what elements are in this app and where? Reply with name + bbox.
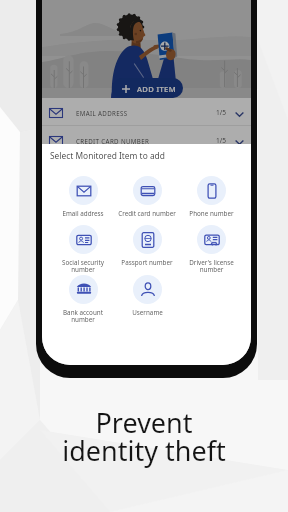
staticText: CREDIT CARD NUMBER	[76, 137, 150, 145]
staticText: Prevent identity theft	[62, 404, 226, 469]
staticText: Credit card number	[118, 209, 176, 218]
button[interactable]: Username	[116, 275, 178, 317]
button[interactable]: EMAIL ADDRESS	[42, 98, 251, 125]
button[interactable]: Bank account number	[52, 275, 114, 324]
button[interactable]: Social security number	[52, 225, 114, 274]
button[interactable]: Credit card number	[116, 176, 178, 218]
staticText: Passport number	[121, 258, 173, 267]
button[interactable]: Driver's license number	[180, 225, 242, 274]
button[interactable]: ADD ITEM	[112, 78, 183, 98]
staticText: Driver's license number	[189, 258, 234, 274]
button[interactable]: Passport number	[116, 225, 178, 267]
staticText: 1/5	[216, 108, 226, 117]
staticText: Select Monitored Item to add	[50, 150, 165, 161]
button[interactable]: CREDIT CARD NUMBER	[42, 126, 251, 153]
button[interactable]: Email address	[52, 176, 114, 218]
staticText: ADD ITEM	[137, 84, 177, 94]
button[interactable]: Phone number	[180, 176, 242, 218]
staticText: 1/5	[216, 136, 226, 145]
staticText: Phone number	[189, 209, 234, 218]
staticText: Email address	[62, 209, 104, 218]
staticText: Bank account number	[63, 308, 103, 324]
staticText: EMAIL ADDRESS	[76, 109, 128, 117]
staticText: Username	[132, 308, 163, 317]
staticText: Social security number	[62, 258, 104, 274]
